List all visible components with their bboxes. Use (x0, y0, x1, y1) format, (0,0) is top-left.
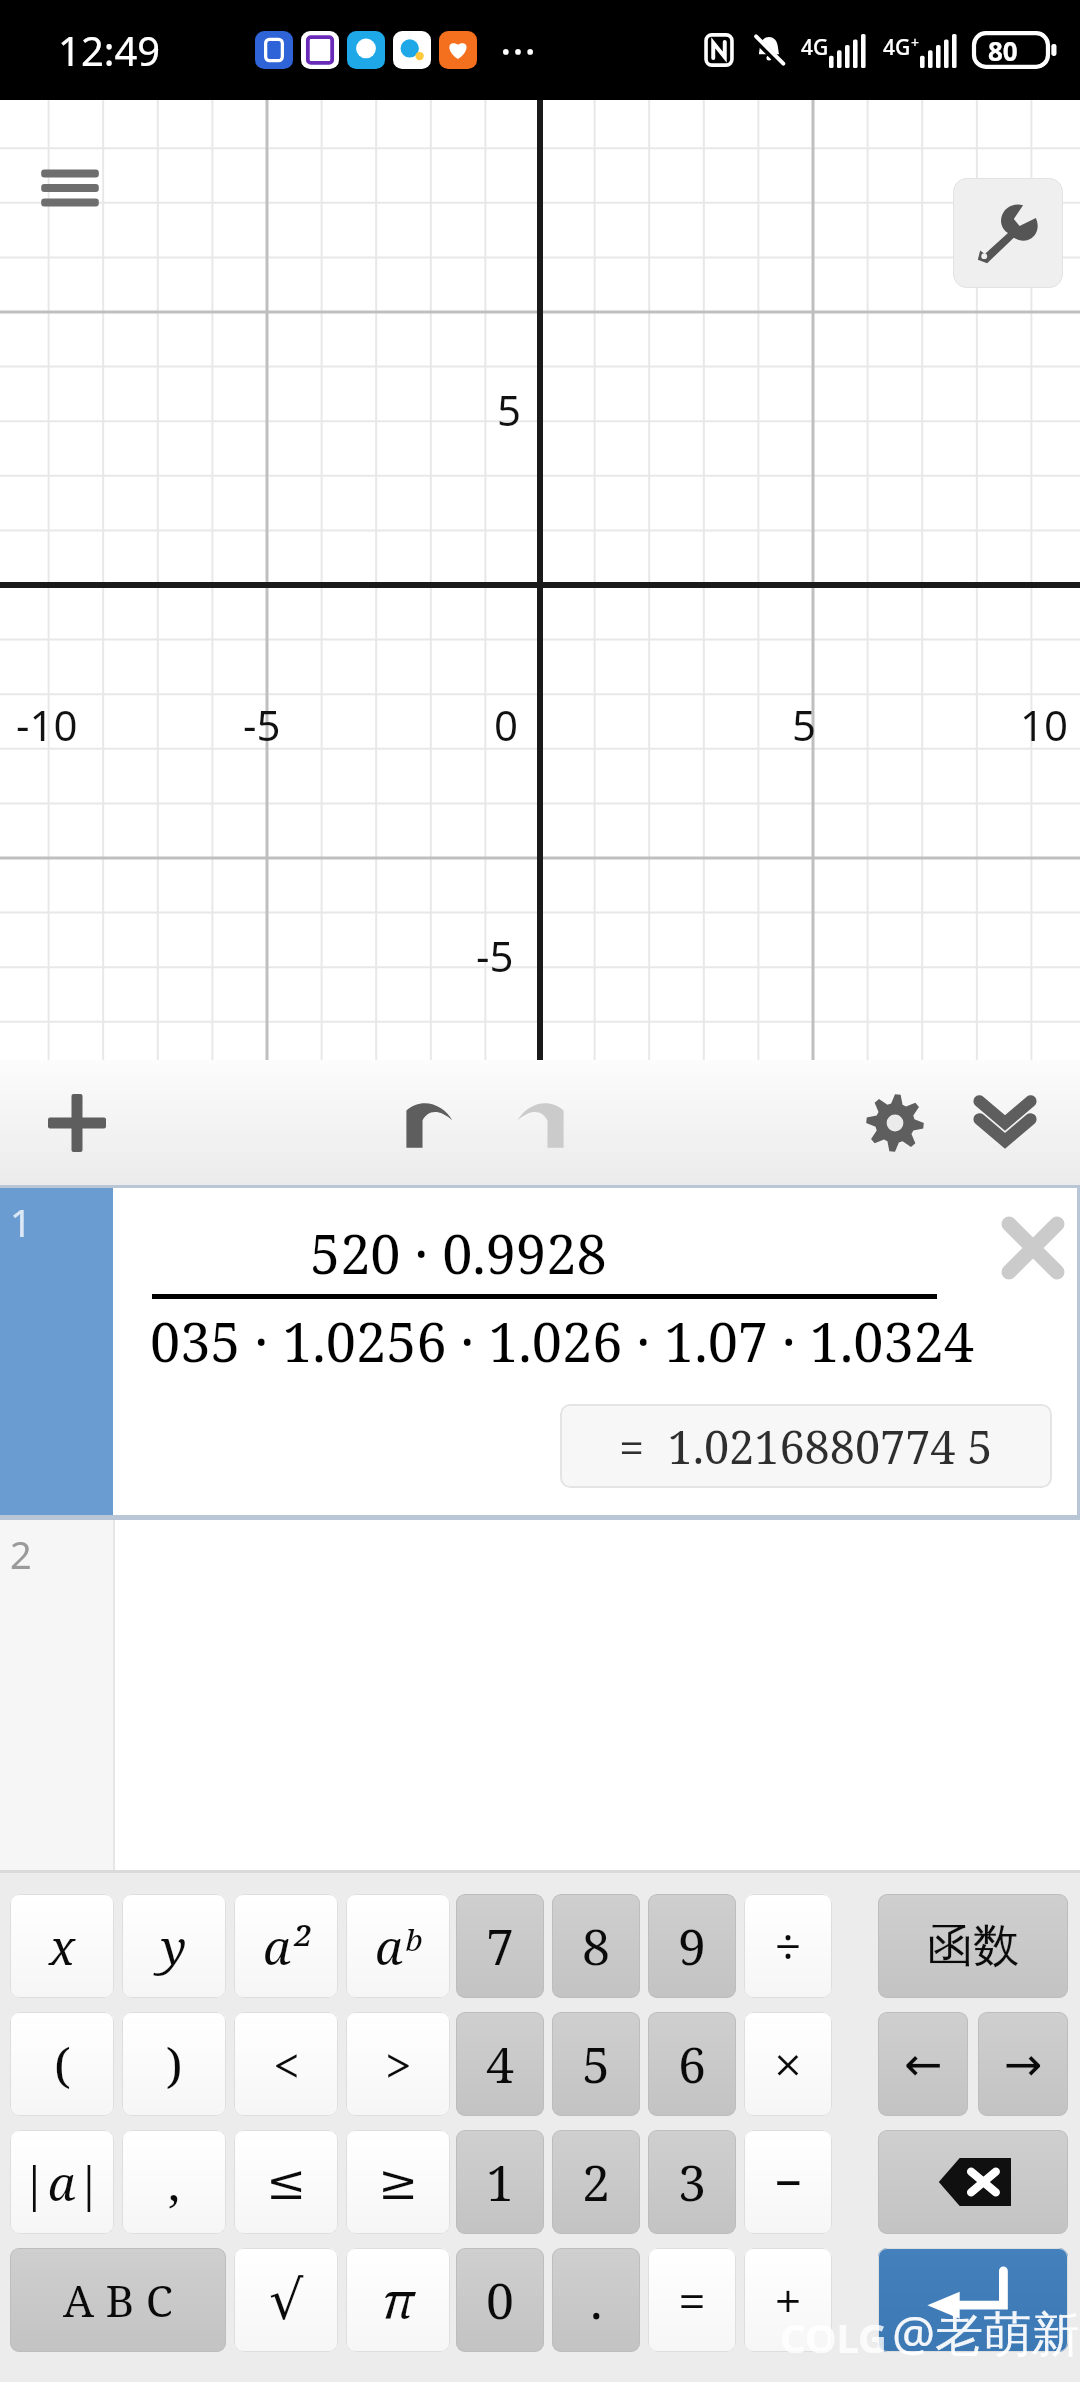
staticText: 035 · 1.0256 · 1.026 · 1.07 · 1.0324 (150, 1304, 975, 1378)
staticText: − (774, 2148, 803, 2216)
staticText: π (382, 2266, 415, 2334)
button[interactable]: < (234, 2012, 338, 2116)
button[interactable]: Collapse (950, 1060, 1060, 1185)
staticText: 1 (486, 2148, 514, 2216)
staticText: -5 (243, 696, 281, 753)
staticText: COLG (780, 2310, 888, 2364)
button[interactable]: . (552, 2248, 640, 2352)
staticText: 6 (678, 2030, 706, 2098)
staticText: aᵇ (375, 1914, 421, 1979)
staticText: = (678, 2266, 706, 2334)
button[interactable]: 函数 (878, 1894, 1068, 1998)
staticText: 8 (582, 1912, 610, 1980)
staticText: |a| (21, 2150, 103, 2215)
staticText: 5 (582, 2030, 610, 2098)
button[interactable]: + (744, 2248, 832, 2352)
button[interactable]: a² (234, 1894, 338, 1998)
button[interactable]: Settings (845, 1060, 945, 1185)
button[interactable]: 6 (648, 2012, 736, 2116)
staticText: 3 (678, 2148, 706, 2216)
staticText: ÷ (774, 1912, 802, 1980)
staticText: < (273, 2032, 300, 2097)
button[interactable]: x (10, 1894, 114, 1998)
staticText: 2 (582, 2148, 610, 2216)
staticText: 7 (486, 1912, 514, 1980)
button[interactable]: y (122, 1894, 226, 1998)
button[interactable]: A B C (10, 2248, 226, 2352)
button[interactable]: 9 (648, 1894, 736, 1998)
staticText: A B C (63, 2270, 173, 2330)
staticText: -10 (16, 696, 78, 753)
button[interactable]: 7 (456, 1894, 544, 1998)
staticText: √ (269, 2269, 304, 2332)
button[interactable]: |a| (10, 2130, 114, 2234)
staticText: 5 (497, 381, 522, 438)
button[interactable]: ≤ (234, 2130, 338, 2234)
button[interactable]: ≥ (346, 2130, 450, 2234)
button[interactable]: 3 (648, 2130, 736, 2234)
button[interactable]: aᵇ (346, 1894, 450, 1998)
button[interactable]: Undo (370, 1060, 480, 1185)
button[interactable]: Redo (490, 1060, 600, 1185)
staticText: 5 (792, 696, 817, 753)
button[interactable]: 4 (456, 2012, 544, 2116)
staticText: 12:49 (58, 23, 161, 77)
button[interactable]: Menu (30, 148, 110, 228)
button[interactable]: ) (122, 2012, 226, 2116)
staticText: 1 (10, 1196, 32, 1248)
button[interactable]: 1 (0, 1188, 1080, 1515)
button[interactable]: π (346, 2248, 450, 2352)
staticText: . (590, 2266, 603, 2334)
button[interactable]: 2 (0, 1520, 1080, 1870)
staticText: ≤ (266, 2154, 307, 2210)
button[interactable]: Move right (978, 2012, 1068, 2116)
button[interactable]: 0 (456, 2248, 544, 2352)
staticText: 9 (678, 1912, 706, 1980)
staticText: > (385, 2032, 412, 2097)
staticText: × (774, 2030, 802, 2098)
staticText: ← (904, 2037, 943, 2091)
staticText: @老萌新 (892, 2300, 1080, 2366)
staticText: 2 (10, 1528, 32, 1580)
staticText: 0 (486, 2266, 514, 2334)
button[interactable]: Add expression (12, 1060, 142, 1185)
staticText: ( (54, 2032, 71, 2097)
staticText: 80 (988, 33, 1018, 68)
staticText: + (911, 33, 920, 52)
button[interactable]: ÷ (744, 1894, 832, 1998)
staticText: a² (263, 1914, 310, 1979)
staticText: 函数 (927, 1917, 1019, 1975)
staticText: -5 (476, 927, 514, 984)
staticText: → (1004, 2037, 1043, 2091)
button[interactable]: 1 (456, 2130, 544, 2234)
staticText: 10 (1020, 696, 1069, 753)
button[interactable]: 8 (552, 1894, 640, 1998)
staticText: y (161, 1914, 187, 1979)
button[interactable]: Graph settings (953, 178, 1063, 288)
staticText: ≥ (378, 2154, 419, 2210)
button[interactable]: 5 (552, 2012, 640, 2116)
staticText: = 1.0216880774 5 (619, 1416, 993, 1477)
button[interactable]: − (744, 2130, 832, 2234)
button[interactable]: Enter (878, 2248, 1068, 2352)
staticText: 4G (883, 33, 911, 62)
staticText: 4G (801, 33, 829, 62)
staticText: x (49, 1914, 76, 1979)
button[interactable]: × (744, 2012, 832, 2116)
staticText: 4 (486, 2030, 514, 2098)
button[interactable]: Backspace (878, 2130, 1068, 2234)
button[interactable]: √ (234, 2248, 338, 2352)
button[interactable]: Move left (878, 2012, 968, 2116)
button[interactable]: 2 (552, 2130, 640, 2234)
staticText: + (774, 2266, 802, 2334)
button[interactable]: > (346, 2012, 450, 2116)
button[interactable]: = (648, 2248, 736, 2352)
button[interactable]: ( (10, 2012, 114, 2116)
staticText: 0 (494, 696, 519, 753)
button[interactable]: Delete expression (985, 1200, 1080, 1296)
staticText: 520 · 0.9928 (310, 1216, 607, 1290)
staticText: ) (166, 2032, 183, 2097)
button[interactable]: , (122, 2130, 226, 2234)
staticText: , (168, 2150, 181, 2215)
